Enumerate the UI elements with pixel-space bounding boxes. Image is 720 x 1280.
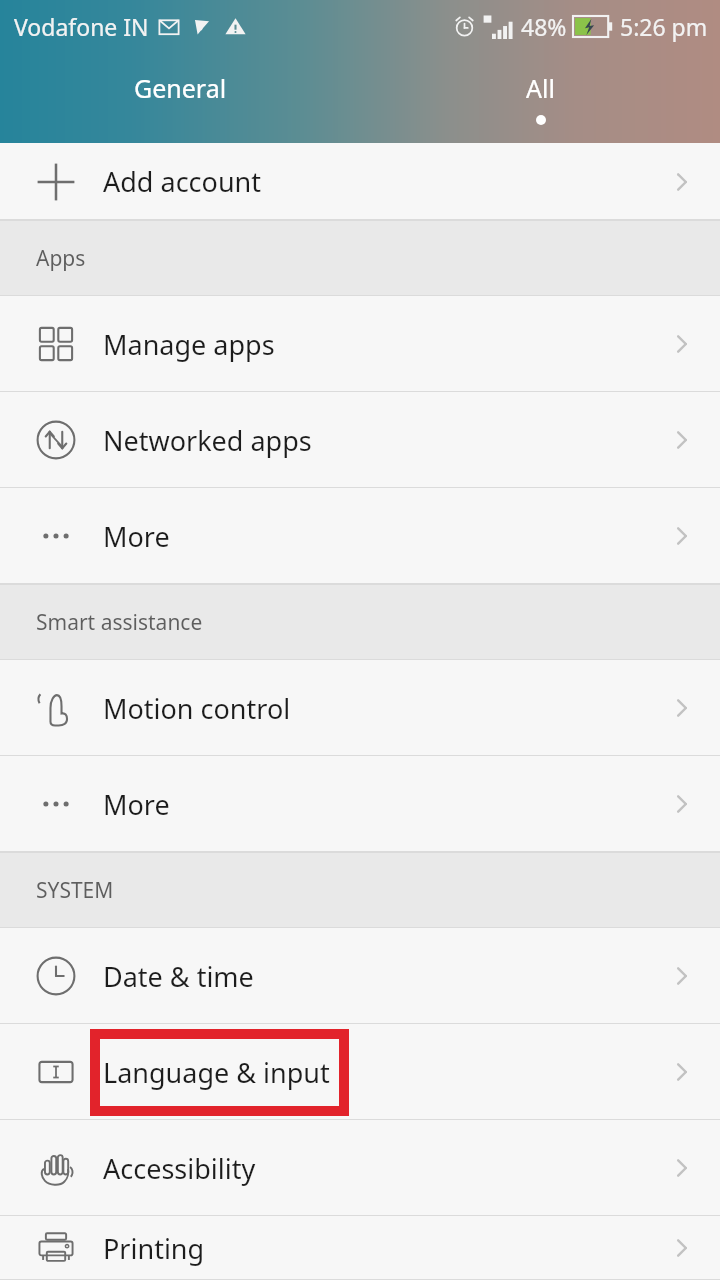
button[interactable]: All — [360, 55, 720, 143]
staticText: Motion control — [103, 690, 291, 727]
button[interactable]: Accessibility — [0, 1120, 720, 1216]
button[interactable]: More — [0, 488, 720, 584]
staticText: General — [134, 71, 227, 105]
staticText: Date & time — [103, 958, 254, 995]
staticText: More — [103, 518, 170, 555]
button[interactable]: More — [0, 756, 720, 852]
staticText: Apps — [36, 244, 86, 273]
staticText: Language & input — [103, 1054, 330, 1091]
staticText: Printing — [103, 1230, 205, 1267]
button[interactable]: Printing — [0, 1216, 720, 1280]
staticText: Networked apps — [103, 422, 312, 459]
staticText: SYSTEM — [36, 876, 114, 905]
button[interactable]: Add account — [0, 143, 720, 220]
staticText: Manage apps — [103, 326, 275, 363]
staticText: Vodafone IN — [14, 11, 149, 42]
staticText: 48% — [521, 11, 567, 42]
button[interactable]: Language & input — [0, 1024, 720, 1120]
button[interactable]: Networked apps — [0, 392, 720, 488]
button[interactable]: General — [0, 55, 360, 143]
staticText: Accessibility — [103, 1150, 256, 1187]
button[interactable]: Motion control — [0, 660, 720, 756]
staticText: 5:26 pm — [620, 11, 708, 42]
button[interactable]: Date & time — [0, 928, 720, 1024]
staticText: Add account — [103, 163, 262, 200]
button[interactable]: Manage apps — [0, 296, 720, 392]
staticText: Smart assistance — [36, 608, 203, 637]
staticText: More — [103, 786, 170, 823]
staticText: All — [526, 71, 555, 105]
